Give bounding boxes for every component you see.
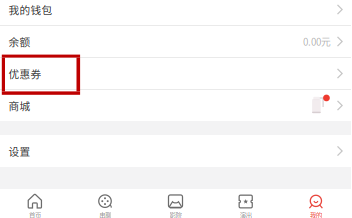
staticText: 串聊 [99,211,111,218]
button[interactable]: 余额 [0,26,351,58]
button[interactable]: 串聊 [70,189,140,218]
button[interactable]: 优惠券 [0,58,351,90]
staticText: 0.00元 [303,34,331,49]
staticText: 优惠券 [8,66,41,81]
button[interactable]: 设置 [0,135,351,167]
button[interactable]: 我的钱包 [0,0,351,26]
staticText: 首页 [29,211,41,218]
button[interactable]: 我的 [281,189,351,218]
staticText: 我的 [310,211,322,218]
button[interactable]: 影院 [140,189,211,218]
staticText: 余额 [8,34,30,49]
staticText: 设置 [8,143,30,159]
button[interactable]: 首页 [0,189,70,218]
staticText: 商城 [8,98,30,113]
staticText: 我的钱包 [8,2,52,17]
staticText: 影院 [169,211,181,218]
button[interactable]: 演出 [211,189,281,218]
button[interactable]: 商城 [0,90,351,121]
staticText: 演出 [240,211,252,218]
